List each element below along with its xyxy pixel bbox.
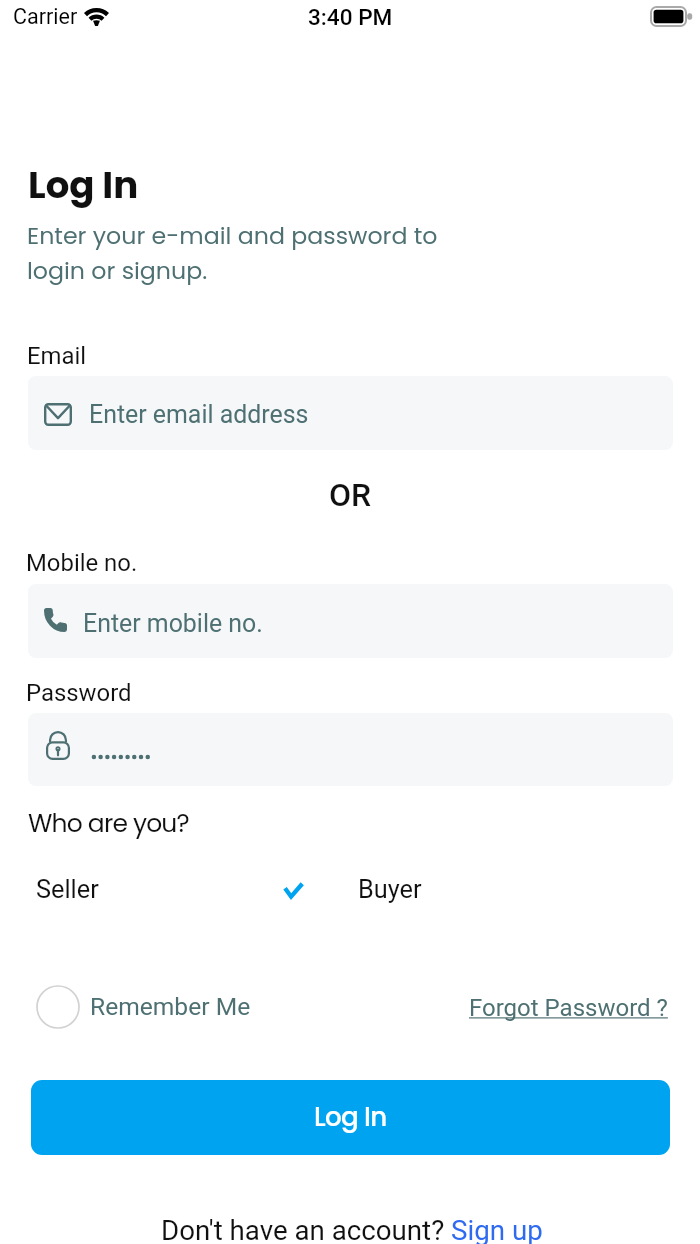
- other: Wi-Fi signal: [84, 8, 109, 26]
- staticText: Enter mobile no.: [83, 609, 263, 638]
- staticText: Enter your e-mail and password to login …: [27, 219, 438, 287]
- staticText: 3:40 PM: [308, 4, 393, 30]
- button[interactable]: Don't have an account? Sign up: [161, 1213, 551, 1244]
- other: Battery full: [650, 6, 694, 27]
- staticText: Who are you?: [28, 806, 189, 841]
- staticText: Log In: [314, 1098, 387, 1135]
- button[interactable]: Seller: [28, 868, 272, 912]
- staticText: Remember Me: [90, 992, 251, 1021]
- button[interactable]: Forgot Password ?: [460, 988, 675, 1030]
- staticText: Email: [27, 342, 87, 370]
- staticText: Forgot Password ?: [469, 994, 668, 1022]
- staticText: Carrier: [13, 4, 78, 29]
- staticText: Seller: [36, 875, 99, 905]
- staticText: Don't have an account? Sign up: [161, 1214, 543, 1244]
- button[interactable]: Mobile number input: [28, 584, 673, 658]
- button[interactable]: Remember me: [28, 982, 268, 1032]
- staticText: Buyer: [358, 875, 422, 905]
- staticText: OR: [329, 476, 372, 514]
- button[interactable]: Selected: [275, 868, 440, 912]
- button[interactable]: Password input: [28, 713, 673, 786]
- staticText: Mobile no.: [26, 549, 138, 577]
- staticText: Log In: [28, 159, 139, 211]
- staticText: Enter email address: [89, 400, 309, 429]
- other: Selected: [286, 885, 301, 897]
- button[interactable]: Log In: [31, 1080, 670, 1155]
- button[interactable]: Email address input: [28, 376, 673, 450]
- staticText: Password: [26, 679, 132, 707]
